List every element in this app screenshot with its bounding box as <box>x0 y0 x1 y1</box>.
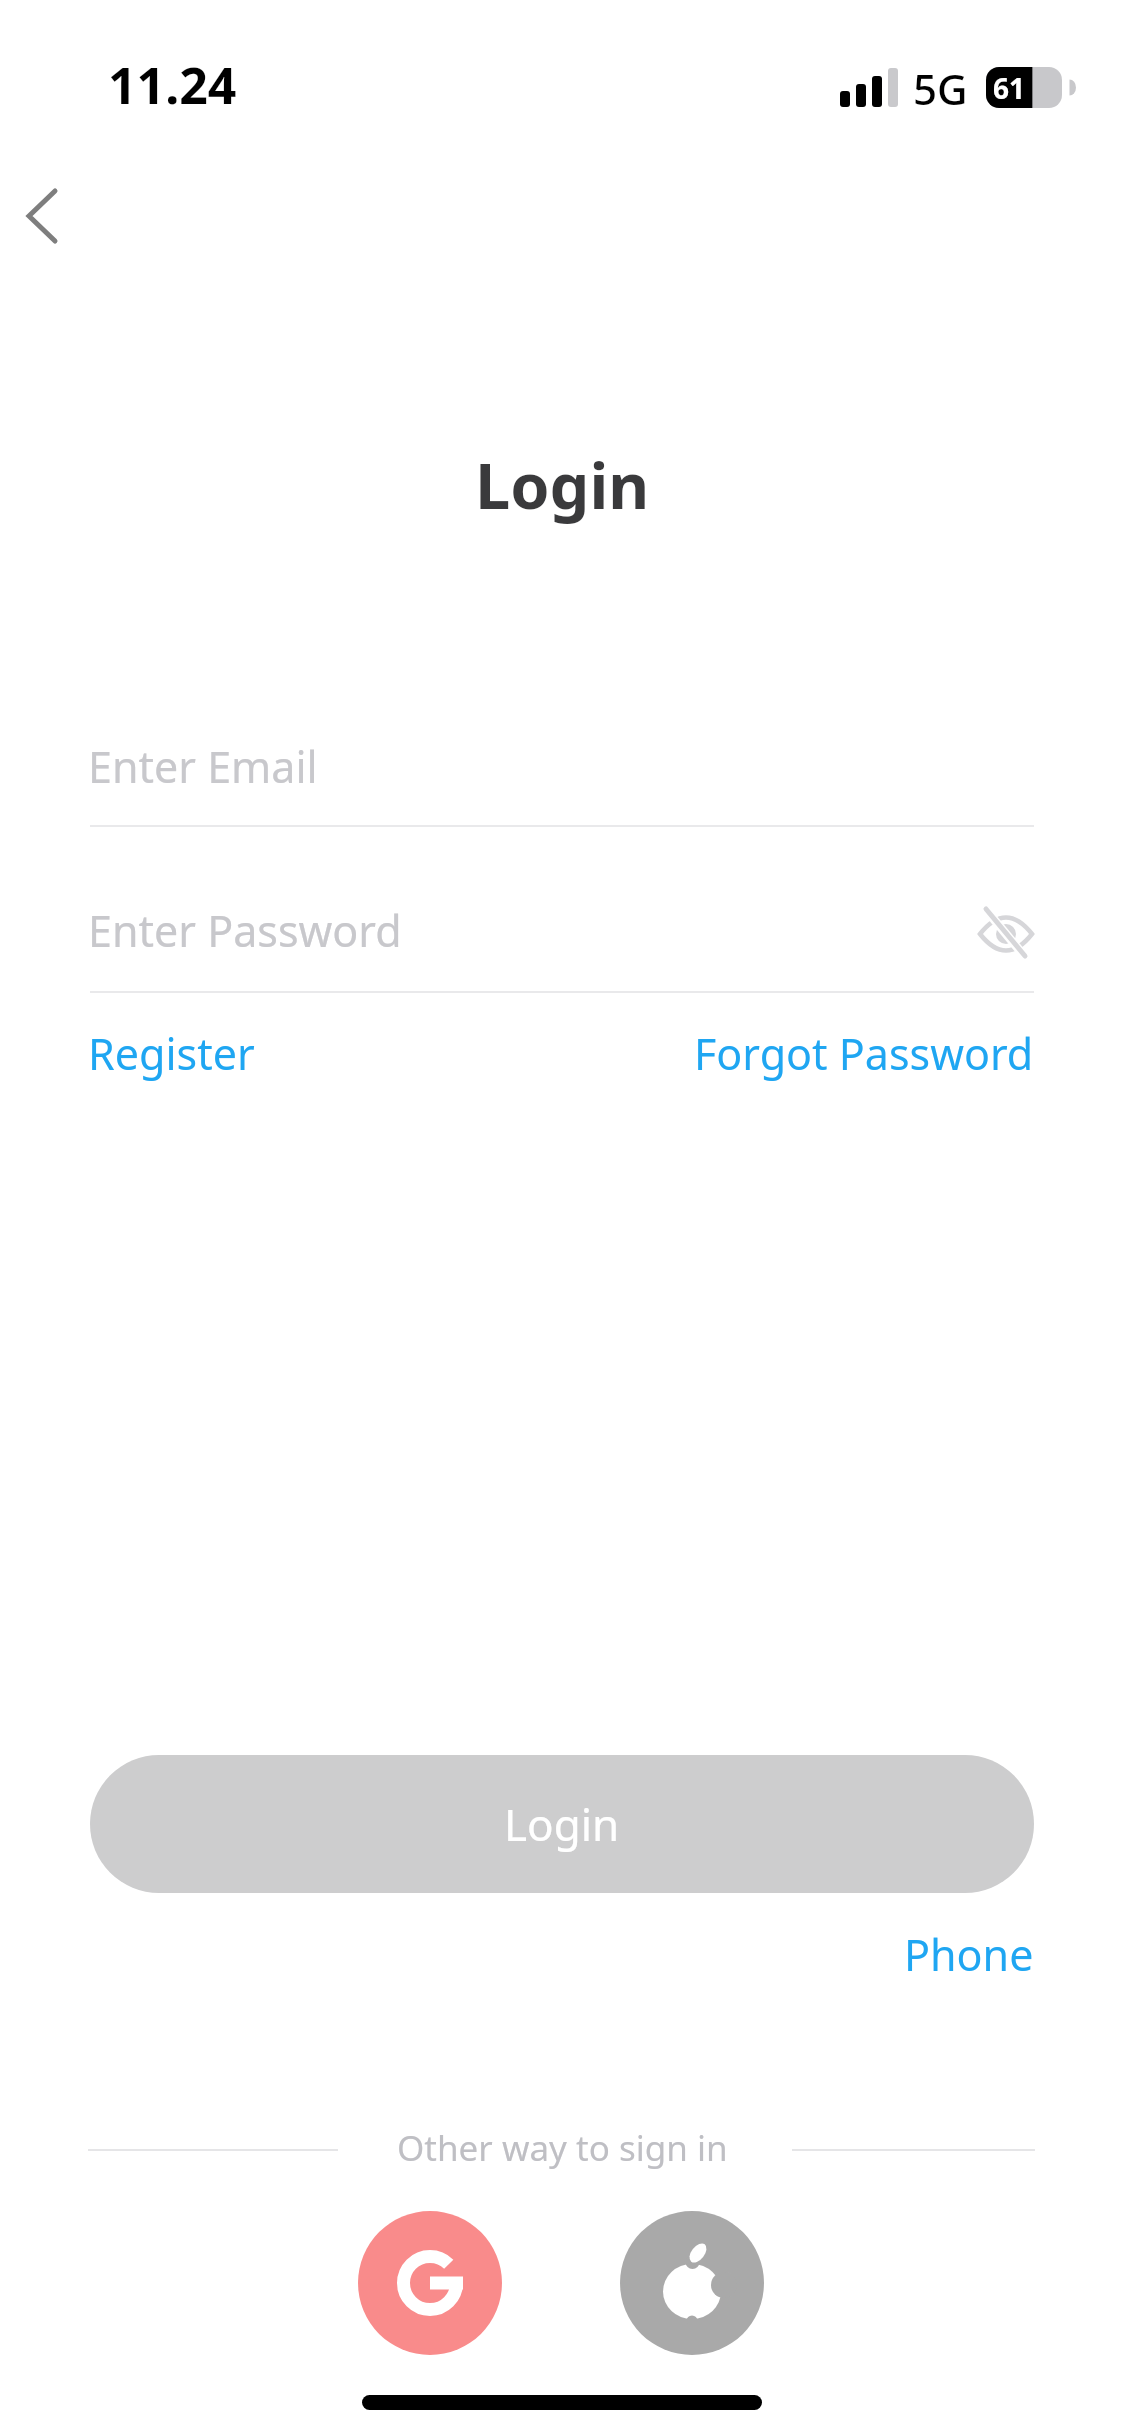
staticText: Login <box>504 1794 620 1854</box>
staticText: Register <box>88 1024 255 1083</box>
staticText: Enter Password <box>88 901 402 960</box>
staticText: 61 <box>993 69 1026 107</box>
button[interactable] <box>966 898 1046 970</box>
button[interactable]: Forgot Password <box>694 1024 1034 1083</box>
button[interactable]: Phone <box>904 1925 1034 1984</box>
staticText: Forgot Password <box>694 1024 1034 1083</box>
button[interactable]: Register <box>88 1024 255 1083</box>
button[interactable] <box>358 2211 502 2355</box>
button[interactable] <box>7 176 77 256</box>
staticText: Phone <box>904 1925 1034 1984</box>
staticText: 5G <box>913 60 968 117</box>
staticText: Other way to sign in <box>397 2124 728 2172</box>
button[interactable]: Login <box>90 1755 1034 1893</box>
button[interactable] <box>620 2211 764 2355</box>
staticText: Login <box>475 442 650 528</box>
staticText: 11.24 <box>108 51 237 119</box>
staticText: Enter Email <box>88 737 318 796</box>
